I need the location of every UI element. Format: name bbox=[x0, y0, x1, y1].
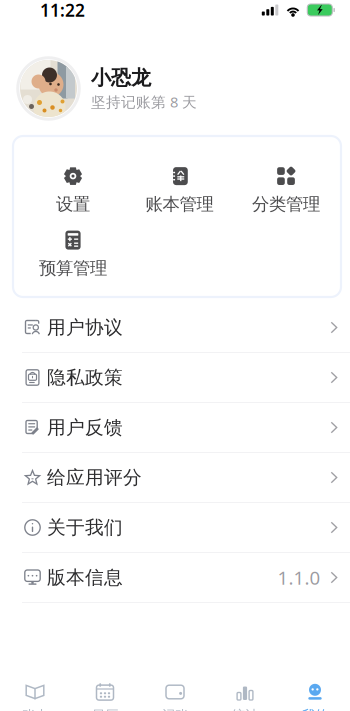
staticText: 给应用评分 bbox=[47, 466, 142, 489]
button[interactable]: 隐私政策 bbox=[0, 353, 350, 402]
staticText: 我的 bbox=[302, 707, 328, 711]
button[interactable]: 统计 bbox=[210, 684, 280, 711]
staticText: 隐私政策 bbox=[47, 366, 123, 389]
button[interactable]: 用户反馈 bbox=[0, 403, 350, 452]
staticText: 账本 bbox=[22, 707, 48, 711]
staticText: 11:22 bbox=[40, 0, 85, 21]
button[interactable]: 用户协议 bbox=[0, 303, 350, 352]
staticText: 版本信息 bbox=[47, 566, 123, 589]
staticText: 坚持记账第 8 天 bbox=[91, 92, 197, 111]
button[interactable]: 预算管理 bbox=[20, 223, 126, 287]
staticText: 日历 bbox=[92, 707, 118, 711]
button[interactable]: 分类管理 bbox=[233, 159, 339, 223]
button[interactable]: 关于我们 bbox=[0, 503, 350, 552]
staticText: 预算管理 bbox=[39, 258, 107, 279]
staticText: 1.1.0 bbox=[277, 565, 320, 590]
staticText: 设置 bbox=[56, 194, 90, 215]
staticText: 小恐龙 bbox=[91, 65, 151, 90]
button[interactable]: 日历 bbox=[70, 684, 140, 711]
staticText: 关于我们 bbox=[47, 516, 123, 539]
staticText: 统计 bbox=[232, 707, 258, 711]
button[interactable]: 账本管理 bbox=[126, 159, 233, 223]
button[interactable]: 我的 bbox=[280, 684, 350, 711]
staticText: 用户协议 bbox=[47, 316, 123, 339]
staticText: 账本管理 bbox=[145, 194, 213, 215]
staticText: 用户反馈 bbox=[47, 416, 123, 439]
button[interactable]: 设置 bbox=[20, 159, 126, 223]
staticText: 分类管理 bbox=[252, 194, 320, 215]
button[interactable]: 给应用评分 bbox=[0, 453, 350, 502]
staticText: 记账 bbox=[162, 707, 188, 711]
button[interactable]: 账本 bbox=[0, 684, 70, 711]
button[interactable]: 版本信息 bbox=[0, 553, 350, 602]
button[interactable]: 记账 bbox=[140, 684, 210, 711]
button[interactable]: 小恐龙 bbox=[0, 57, 350, 120]
